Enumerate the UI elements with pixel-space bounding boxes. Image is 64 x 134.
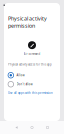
button[interactable]: Home [24, 121, 40, 134]
staticText: Air command [23, 52, 40, 56]
staticText: Physical activity permission [8, 15, 47, 29]
button[interactable]: Recent apps [40, 121, 55, 134]
button[interactable]: Use all apps with this permission [4, 88, 60, 95]
staticText: Allow [17, 73, 25, 77]
staticText: Use all apps with this permission [8, 91, 53, 95]
staticText: Don't allow [17, 82, 33, 86]
button[interactable]: Back [9, 121, 24, 134]
staticText: Physical activity access for this app [8, 63, 52, 66]
button[interactable]: Don't allow [4, 80, 60, 88]
button[interactable]: Allow [4, 71, 60, 79]
